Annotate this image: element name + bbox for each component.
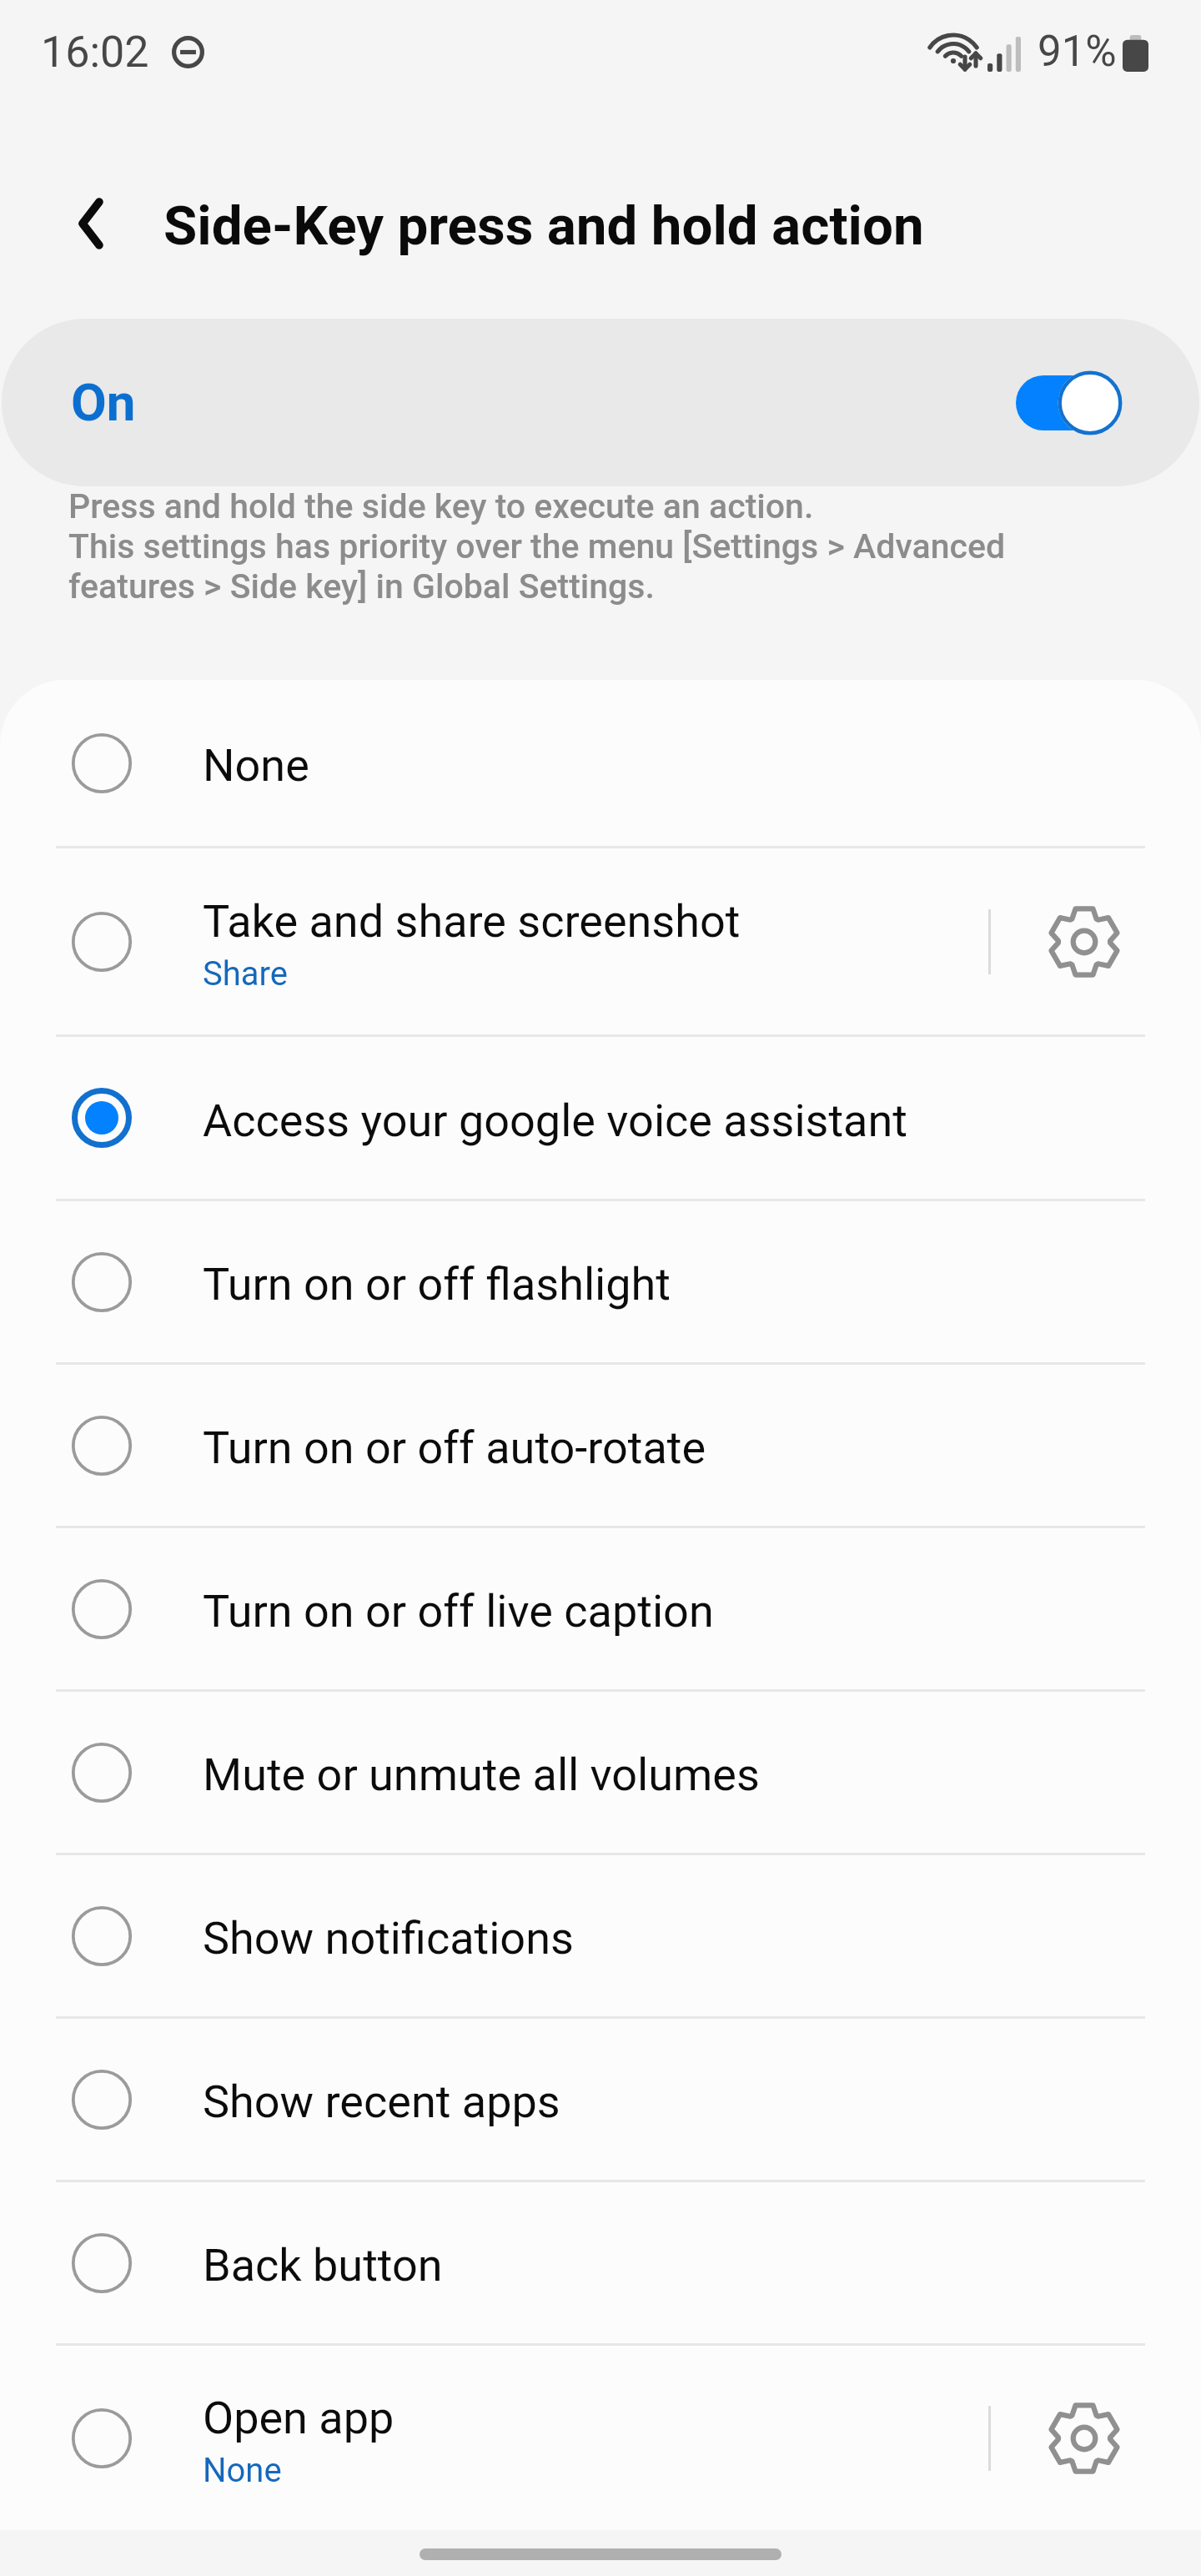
staticText: Open app	[203, 2392, 394, 2444]
button[interactable]: Turn on or off live caption	[0, 1528, 1201, 1689]
button[interactable]: Take and share screenshot	[0, 848, 1201, 1034]
staticText: Show recent apps	[203, 2075, 560, 2128]
staticText: Turn on or off live caption	[203, 1585, 714, 1638]
button[interactable]: None	[0, 680, 1201, 846]
staticText: On	[71, 372, 136, 433]
button[interactable]: Back button	[0, 2182, 1201, 2343]
button[interactable]: Show notifications	[0, 1855, 1201, 2016]
staticText: Press and hold the side key to execute a…	[68, 486, 1019, 606]
staticText: Show notifications	[203, 1912, 574, 1965]
button[interactable]: Access your google voice assistant	[0, 1037, 1201, 1199]
staticText: Back button	[203, 2239, 443, 2292]
button[interactable]: Turn on or off flashlight	[0, 1201, 1201, 1362]
staticText: Access your google voice assistant	[203, 1094, 907, 1147]
button[interactable]: Show recent apps	[0, 2019, 1201, 2180]
button[interactable]: On	[2, 319, 1199, 486]
button[interactable]: Turn on or off auto-rotate	[0, 1365, 1201, 1526]
staticText: 16:02	[41, 27, 149, 78]
button[interactable]: Settings	[991, 848, 1201, 1034]
staticText: None	[203, 2451, 282, 2490]
button[interactable]: Open app	[0, 2346, 1201, 2530]
staticText: Mute or unmute all volumes	[203, 1748, 760, 1801]
staticText: Side-Key press and hold action	[163, 194, 924, 258]
staticText: None	[203, 739, 309, 792]
button[interactable]: Settings	[991, 2346, 1201, 2530]
staticText: Share	[203, 954, 288, 994]
staticText: Take and share screenshot	[203, 895, 741, 948]
button[interactable]: Mute or unmute all volumes	[0, 1692, 1201, 1853]
staticText: Turn on or off auto-rotate	[203, 1421, 706, 1474]
staticText: 91%	[1038, 27, 1117, 77]
staticText: Turn on or off flashlight	[203, 1258, 671, 1311]
button[interactable]: Back	[48, 181, 133, 266]
